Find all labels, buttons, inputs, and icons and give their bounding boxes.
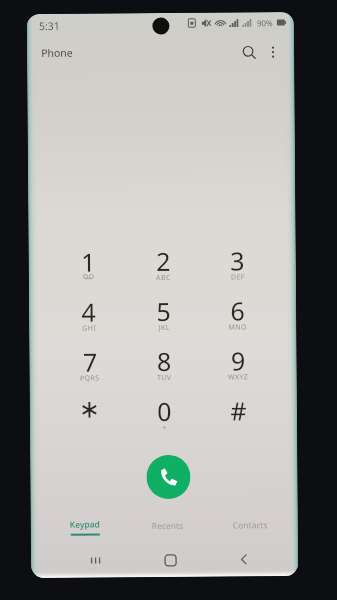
- staticText: 7: [82, 344, 98, 379]
- staticText: #: [230, 393, 247, 427]
- staticText: TUV: [157, 373, 172, 383]
- button[interactable]: Home: [133, 545, 207, 575]
- button[interactable]: Back: [207, 544, 281, 575]
- button[interactable]: More options: [261, 40, 285, 64]
- staticText: Phone: [41, 46, 73, 60]
- button[interactable]: Call: [146, 455, 191, 499]
- staticText: 5:31: [39, 19, 60, 33]
- button[interactable]: #: [201, 386, 275, 437]
- button[interactable]: 4: [51, 287, 126, 338]
- staticText: Keypad: [70, 518, 100, 531]
- staticText: 0: [157, 394, 172, 428]
- staticText: JKL: [158, 323, 170, 333]
- button[interactable]: 8: [126, 337, 201, 387]
- staticText: PQRS: [80, 373, 100, 384]
- button[interactable]: 3: [199, 236, 274, 287]
- staticText: ABC: [156, 273, 171, 283]
- button[interactable]: Recents: [126, 513, 209, 539]
- staticText: 90%: [257, 17, 273, 28]
- button[interactable]: 6: [200, 286, 274, 337]
- button[interactable]: 1: [50, 237, 126, 288]
- button[interactable]: 0: [127, 387, 201, 437]
- staticText: ∗: [79, 394, 100, 424]
- staticText: Recents: [152, 520, 184, 532]
- staticText: GHI: [82, 323, 96, 334]
- button[interactable]: Search: [237, 40, 261, 64]
- button[interactable]: Keypad: [43, 513, 126, 540]
- button[interactable]: 2: [125, 237, 200, 287]
- staticText: 2: [156, 244, 171, 278]
- button[interactable]: 5: [126, 287, 200, 337]
- button[interactable]: 9: [200, 336, 275, 387]
- staticText: 5: [156, 294, 171, 328]
- staticText: 3: [230, 243, 245, 277]
- staticText: 1: [81, 244, 96, 279]
- staticText: Contacts: [233, 519, 268, 531]
- button[interactable]: ∗: [52, 387, 127, 438]
- staticText: MNO: [228, 322, 247, 332]
- button[interactable]: 7: [51, 337, 127, 388]
- staticText: 4: [81, 294, 96, 329]
- staticText: 9: [230, 343, 246, 377]
- staticText: DEF: [231, 272, 245, 282]
- staticText: 6: [230, 293, 245, 327]
- staticText: 8: [156, 344, 172, 378]
- button[interactable]: Recent apps: [58, 545, 133, 576]
- button[interactable]: Contacts: [209, 512, 292, 539]
- staticText: WXYZ: [228, 372, 249, 382]
- staticText: +: [162, 423, 167, 433]
